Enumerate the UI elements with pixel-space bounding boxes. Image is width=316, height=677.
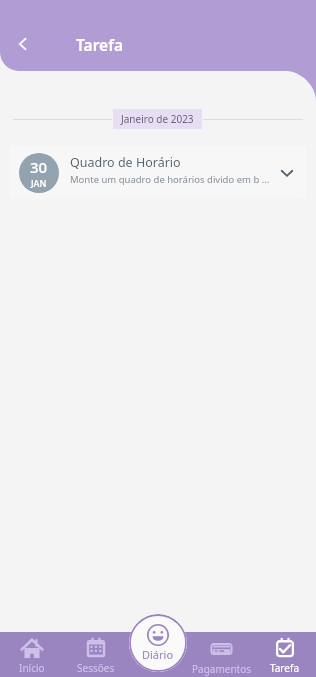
staticText: Quadro de Horário	[70, 154, 181, 171]
button[interactable]: 30	[9, 146, 307, 199]
staticText: Tarefa	[270, 661, 299, 675]
button[interactable]: Pagamentos	[190, 632, 253, 677]
button[interactable]: Expand	[277, 163, 297, 183]
button[interactable]: Sessões	[64, 632, 127, 677]
staticText: Início	[19, 661, 45, 675]
staticText: Monte um quadro de horários divido em b …	[70, 173, 270, 186]
staticText: Tarefa	[76, 34, 123, 55]
staticText: 30	[30, 157, 48, 177]
staticText: Janeiro de 2023	[121, 112, 194, 126]
staticText: Sessões	[77, 661, 115, 675]
staticText: Diário	[142, 647, 174, 662]
button[interactable]: Diário	[129, 614, 187, 672]
button[interactable]: Back	[5, 26, 41, 62]
button[interactable]: Início	[0, 632, 64, 677]
button[interactable]: Tarefa	[253, 632, 316, 677]
staticText: Pagamentos	[192, 662, 252, 676]
staticText: JAN	[31, 177, 47, 189]
